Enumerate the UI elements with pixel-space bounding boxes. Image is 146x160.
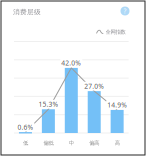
- staticText: 偏高: [89, 140, 99, 146]
- staticText: ?: [123, 7, 126, 15]
- staticText: 14.9%: [107, 100, 127, 109]
- staticText: 全网指数: [105, 29, 125, 35]
- staticText: 42.0%: [61, 58, 81, 67]
- staticText: 偏低: [43, 140, 53, 146]
- staticText: 低: [23, 140, 28, 146]
- staticText: 27.0%: [84, 82, 104, 91]
- staticText: 0.6%: [17, 123, 33, 131]
- button[interactable]: 全网指数: [95, 29, 126, 35]
- staticText: 中: [69, 140, 74, 146]
- staticText: 高: [115, 140, 120, 146]
- staticText: 15.3%: [38, 100, 58, 109]
- staticText: 消费层级: [13, 8, 41, 16]
- button[interactable]: 说明: [118, 4, 132, 18]
